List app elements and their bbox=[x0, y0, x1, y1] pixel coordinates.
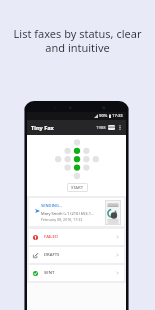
staticText: 1988 bbox=[96, 125, 106, 131]
button[interactable]: DRAFTS bbox=[29, 247, 124, 263]
button[interactable]: FAILED bbox=[29, 229, 124, 245]
staticText: START bbox=[71, 185, 84, 191]
button[interactable]: Credits bbox=[108, 125, 115, 130]
staticText: Mary Smith (+1 (210) 653-1... bbox=[41, 211, 95, 216]
staticText: SENDING... bbox=[41, 203, 63, 208]
staticText: FAILED bbox=[44, 234, 58, 240]
staticText: February 08, 2018, 17:33 bbox=[41, 217, 83, 222]
staticText: SENT bbox=[44, 270, 55, 276]
button[interactable]: More options bbox=[118, 123, 122, 132]
staticText: 90% bbox=[99, 113, 108, 119]
staticText: DRAFTS bbox=[44, 252, 60, 258]
button[interactable]: SENT bbox=[29, 265, 124, 281]
staticText: 17:33 bbox=[112, 113, 123, 119]
button[interactable]: START bbox=[67, 183, 88, 192]
button[interactable]: SENDING... bbox=[29, 198, 124, 226]
staticText: List faxes by status, clear and intuitiv… bbox=[0, 26, 155, 55]
staticText: Tiny Fax bbox=[31, 124, 54, 132]
